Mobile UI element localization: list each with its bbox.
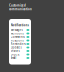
button[interactable]: Comments (9, 35, 31, 39)
button[interactable]: Email (9, 56, 31, 60)
staticText: Notifications (11, 23, 29, 27)
staticText: Reactions (11, 39, 24, 42)
staticText: Email (11, 56, 17, 60)
button[interactable]: Messages (9, 28, 31, 32)
staticText: Mentions (11, 32, 24, 35)
staticText: Invites (11, 49, 20, 53)
button[interactable]: Updates (9, 46, 31, 49)
staticText: Updates (11, 46, 22, 49)
button[interactable]: Mentions (9, 32, 31, 35)
button[interactable]: Invites (9, 49, 31, 53)
staticText: Reminders (11, 42, 26, 46)
staticText: Digest (11, 53, 20, 56)
button[interactable]: Reactions (9, 39, 31, 42)
button[interactable]: Digest (9, 53, 31, 56)
staticText: communication (9, 7, 32, 11)
staticText: Customized (9, 4, 26, 7)
staticText: Comments (11, 35, 25, 39)
button[interactable]: Reminders (9, 42, 31, 46)
staticText: Messages (11, 28, 23, 32)
